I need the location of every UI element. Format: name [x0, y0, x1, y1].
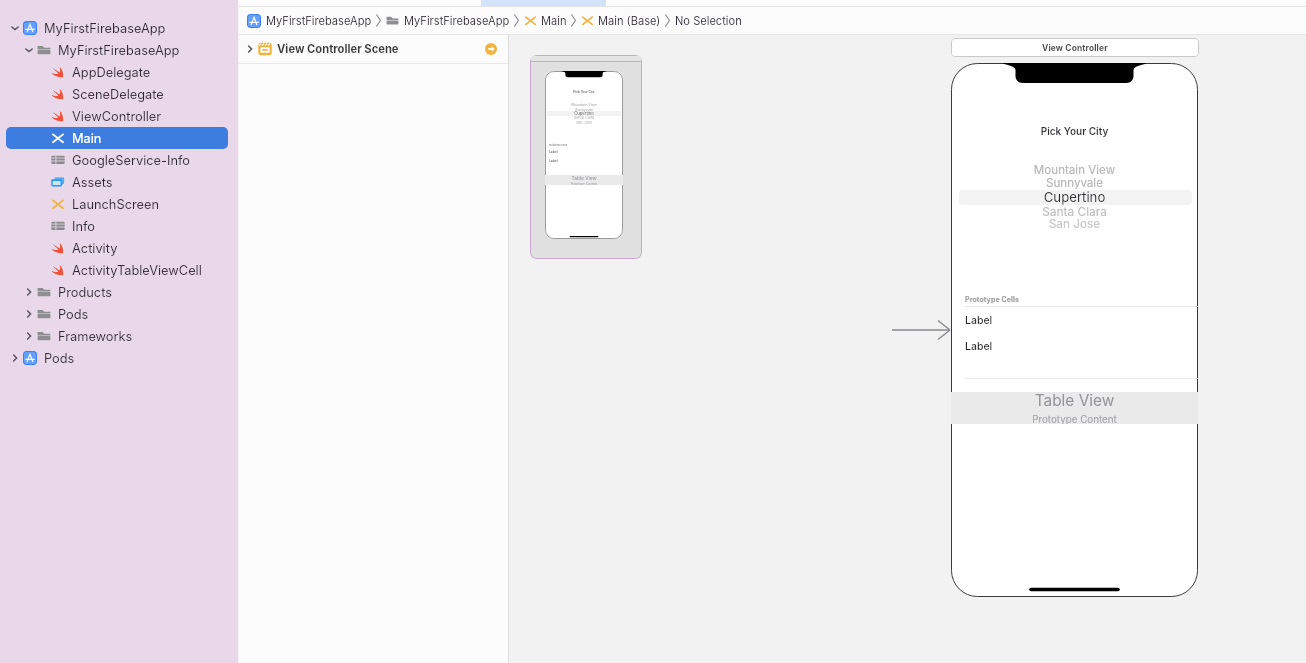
staticText: San Jose: [545, 120, 623, 125]
staticText: Pick Your City: [545, 90, 623, 94]
staticText: Sunnyvale: [951, 176, 1198, 190]
button[interactable]: Info: [6, 215, 228, 237]
button[interactable]: Main: [6, 127, 228, 149]
button[interactable]: SceneDelegate: [6, 83, 228, 105]
staticText: LaunchScreen: [72, 197, 160, 212]
staticText: Prototype Content: [951, 414, 1198, 424]
staticText: Main: [72, 131, 102, 146]
staticText: Sunnyvale: [545, 107, 623, 111]
staticText: MyFirstFirebaseApp: [58, 43, 180, 58]
staticText: No Selection: [675, 14, 742, 27]
staticText: Santa Clara: [951, 204, 1198, 218]
staticText: Cupertino: [545, 111, 623, 116]
staticText: Products: [58, 285, 112, 300]
button[interactable]: Pods: [6, 347, 228, 369]
button[interactable]: Show related items: [485, 43, 497, 55]
staticText: Mountain View: [545, 102, 623, 106]
button[interactable]: View Controller Scene: [239, 35, 508, 63]
staticText: Prototype Content: [545, 182, 623, 185]
button[interactable]: View Controller: [951, 38, 1199, 57]
staticText: Frameworks: [58, 329, 133, 344]
staticText: Santa Clara: [545, 115, 623, 120]
staticText: AppDelegate: [72, 65, 151, 80]
button[interactable]: LaunchScreen: [6, 193, 228, 215]
staticText: ActivityTableViewCell: [72, 263, 202, 278]
staticText: Activity: [72, 241, 118, 256]
button[interactable]: ActivityTableViewCell: [6, 259, 228, 281]
staticText: Table View: [545, 175, 623, 181]
button[interactable]: GoogleService-Info: [6, 149, 228, 171]
button[interactable]: Activity: [6, 237, 228, 259]
button[interactable]: ViewController: [6, 105, 228, 127]
staticText: San Jose: [951, 217, 1198, 231]
button[interactable]: Products: [6, 281, 228, 303]
button[interactable]: Frameworks: [6, 325, 228, 347]
button[interactable]: Assets: [6, 171, 228, 193]
staticText: Main: [541, 14, 567, 27]
staticText: Cupertino: [951, 189, 1198, 205]
staticText: MyFirstFirebaseApp: [266, 14, 372, 27]
staticText: Info: [72, 219, 96, 234]
staticText: GoogleService-Info: [72, 153, 190, 168]
button[interactable]: MyFirstFirebaseApp: [6, 39, 228, 61]
staticText: SceneDelegate: [72, 87, 164, 102]
staticText: ViewController: [72, 109, 162, 124]
staticText: Table View: [951, 392, 1198, 410]
staticText: Pods: [58, 307, 89, 322]
staticText: Label: [965, 314, 993, 327]
staticText: MyFirstFirebaseApp: [404, 14, 510, 27]
staticText: Label: [549, 159, 558, 163]
staticText: Prototype Cells: [965, 295, 1020, 303]
staticText: View Controller: [1042, 43, 1108, 53]
button[interactable]: Pods: [6, 303, 228, 325]
staticText: Mountain View: [951, 163, 1198, 177]
staticText: Label: [965, 340, 993, 353]
staticText: Main (Base): [598, 14, 661, 27]
staticText: View Controller Scene: [277, 42, 399, 56]
staticText: Assets: [72, 175, 113, 190]
staticText: Pods: [44, 351, 75, 366]
staticText: Pick Your City: [951, 125, 1198, 137]
staticText: MyFirstFirebaseApp: [44, 21, 166, 36]
button[interactable]: MyFirstFirebaseApp: [6, 17, 228, 39]
button[interactable]: AppDelegate: [6, 61, 228, 83]
staticText: Label: [549, 150, 558, 154]
staticText: Prototype Cells: [549, 144, 568, 147]
